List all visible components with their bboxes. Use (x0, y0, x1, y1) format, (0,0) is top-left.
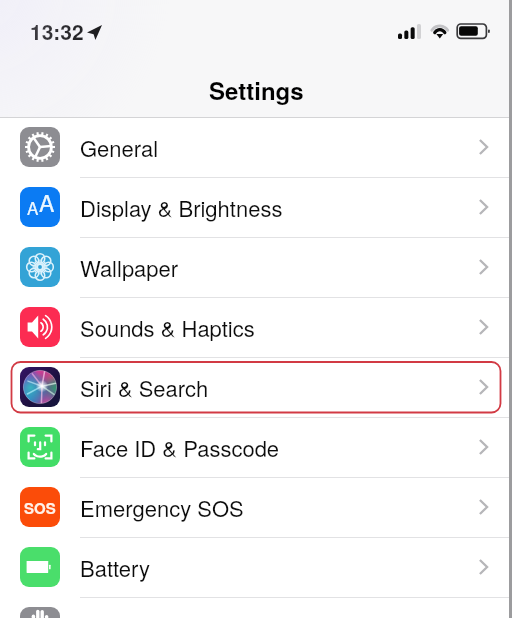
button[interactable]: Siri & Search (0, 358, 512, 418)
staticText: SOS (24, 497, 56, 518)
staticText: A (27, 195, 39, 219)
staticText: Siri & Search (80, 372, 209, 404)
staticText: Face ID & Passcode (80, 432, 280, 464)
button[interactable]: Battery (0, 538, 512, 598)
button[interactable]: Sounds & Haptics (0, 298, 512, 358)
button[interactable]: General (0, 118, 512, 178)
button[interactable]: Privacy (0, 598, 512, 618)
staticText: Wallpaper (80, 252, 179, 284)
staticText: Sounds & Haptics (80, 312, 255, 344)
staticText: Emergency SOS (80, 492, 244, 524)
staticText: 13:32 (30, 16, 84, 46)
staticText: Display & Brightness (80, 192, 283, 224)
staticText: General (80, 132, 159, 164)
staticText: Battery (80, 552, 150, 584)
button[interactable]: SOS (0, 478, 512, 538)
button[interactable]: Face ID & Passcode (0, 418, 512, 478)
staticText: A (39, 187, 55, 219)
staticText: Settings (209, 73, 304, 107)
button[interactable]: Wallpaper (0, 238, 512, 298)
button[interactable]: A (0, 178, 512, 238)
